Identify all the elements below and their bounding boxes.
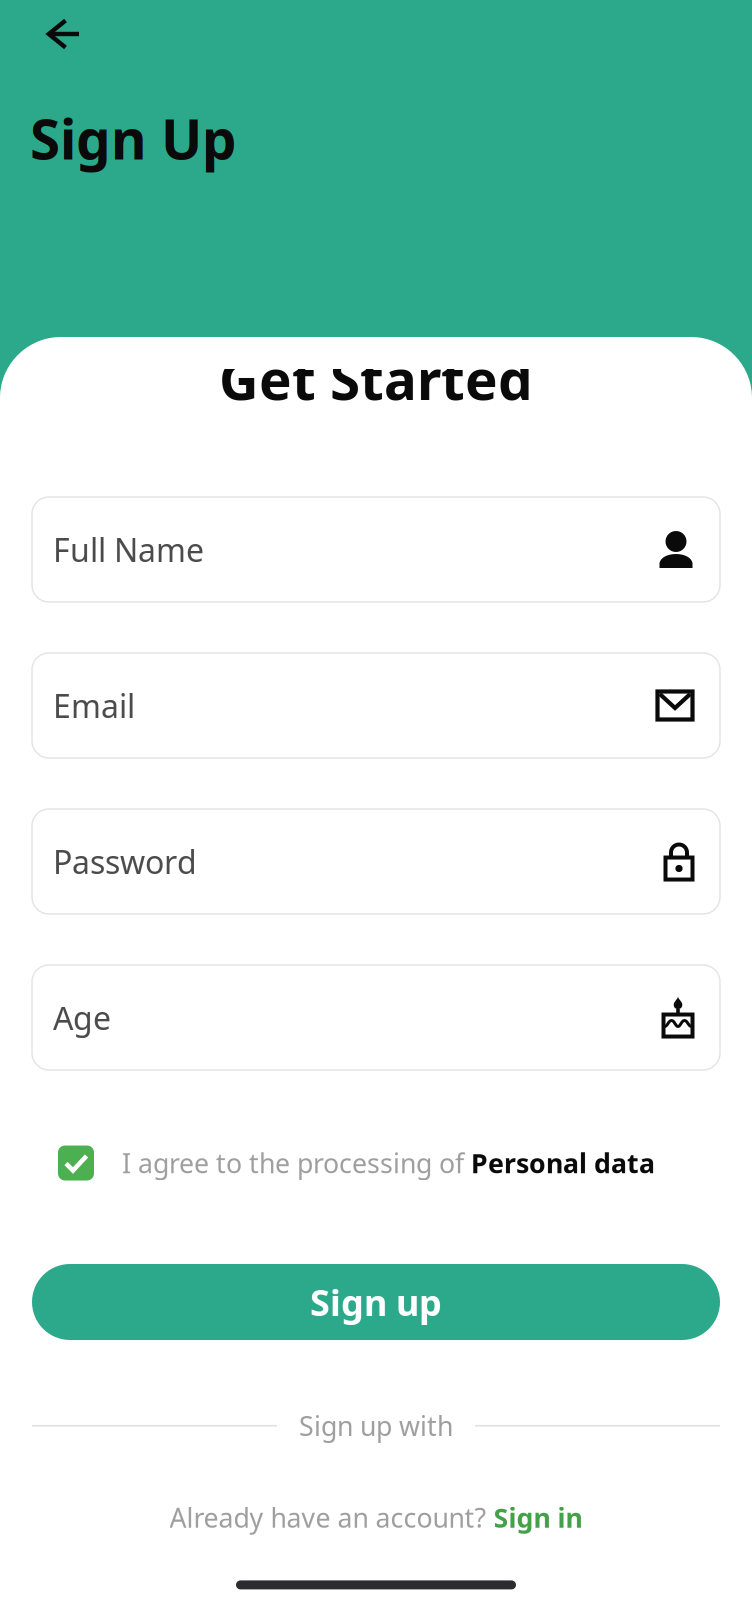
staticText: Password [53,840,197,883]
staticText: Sign Up [30,102,237,175]
button[interactable]: Already have an account? [169,1499,582,1535]
staticText: Already have an account? [169,1500,493,1535]
button[interactable]: Back [36,10,91,58]
staticText: Full Name [53,528,204,571]
button[interactable]: I agree to the processing of [0,1145,752,1181]
staticText: Sign up with [299,1408,453,1443]
staticText: Email [53,684,135,727]
staticText: Sign up [310,1278,442,1326]
staticText: Get Started [219,342,533,415]
staticText: Personal data [471,1145,655,1181]
button[interactable]: Sign up [32,1264,720,1340]
staticText: Sign in [493,1500,582,1535]
staticText: I agree to the processing of [122,1145,471,1181]
staticText: Age [53,996,111,1039]
